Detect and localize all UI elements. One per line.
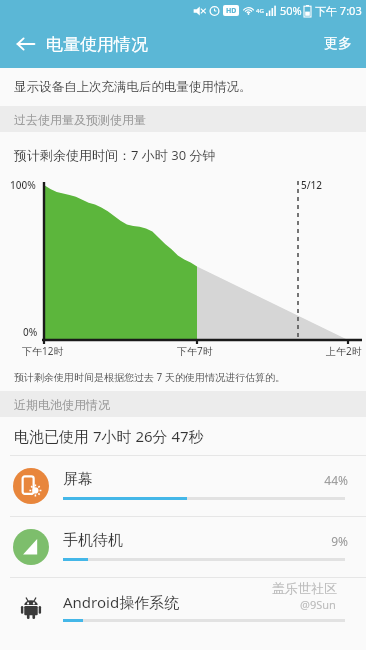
staticText: 5/12	[301, 178, 323, 192]
staticText: 下午7时	[177, 344, 213, 358]
button[interactable]: 屏幕	[0, 456, 366, 516]
staticText: 0%	[23, 325, 38, 339]
staticText: 上午2时	[326, 344, 362, 358]
button[interactable]: Android操作系统	[0, 578, 366, 638]
staticText: 手机待机	[63, 531, 123, 550]
staticText: 近期电池使用情况	[14, 397, 110, 412]
staticText: 50%	[280, 3, 302, 18]
staticText: 100%	[10, 178, 36, 192]
staticText: 电量使用情况	[46, 34, 148, 55]
staticText: 9%	[0, 533, 348, 549]
staticText: HD	[226, 6, 237, 16]
staticText: 预计剩余使用时间：7 小时 30 分钟	[14, 146, 216, 164]
staticText: 4G	[256, 7, 264, 15]
staticText: 下午 7:03	[315, 3, 362, 18]
staticText: 盖乐世社区	[272, 580, 337, 596]
button[interactable]: 更多	[310, 20, 366, 68]
staticText: 过去使用量及预测使用量	[14, 112, 146, 127]
staticText: Android操作系统	[63, 592, 180, 612]
staticText: 下午12时	[22, 344, 64, 358]
staticText: 显示设备自上次充满电后的电量使用情况。	[14, 79, 366, 95]
button[interactable]: Back	[6, 24, 46, 64]
staticText: 更多	[324, 35, 352, 53]
staticText: 电池已使用 7小时 26分 47秒	[14, 426, 204, 446]
button[interactable]: 手机待机	[0, 517, 366, 577]
staticText: 44%	[0, 472, 348, 488]
staticText: 屏幕	[63, 470, 93, 489]
staticText: 预计剩余使用时间是根据您过去 7 天的使用情况进行估算的。	[14, 370, 285, 384]
staticText: @9Sun	[300, 597, 336, 612]
